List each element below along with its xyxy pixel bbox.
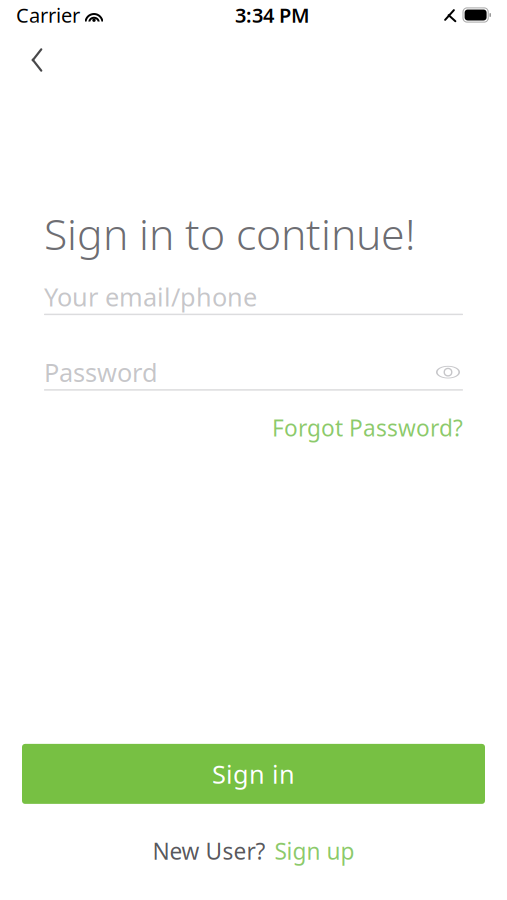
staticText: New User?: [152, 836, 265, 866]
button[interactable]: Forgot Password?: [272, 407, 463, 449]
staticText: Password: [44, 355, 158, 389]
staticText: Your email/phone: [44, 280, 257, 313]
staticText: Carrier: [16, 2, 80, 28]
staticText: Forgot Password?: [272, 413, 463, 443]
button[interactable]: Sign up: [274, 836, 354, 866]
staticText: Sign in to continue!: [44, 205, 415, 262]
staticText: 3:34 PM: [235, 2, 310, 28]
button[interactable]: Back: [14, 37, 60, 83]
staticText: Sign up: [274, 836, 354, 866]
button[interactable]: Show password: [433, 357, 463, 387]
staticText: Sign in: [212, 757, 295, 791]
button[interactable]: Sign in: [22, 744, 485, 804]
